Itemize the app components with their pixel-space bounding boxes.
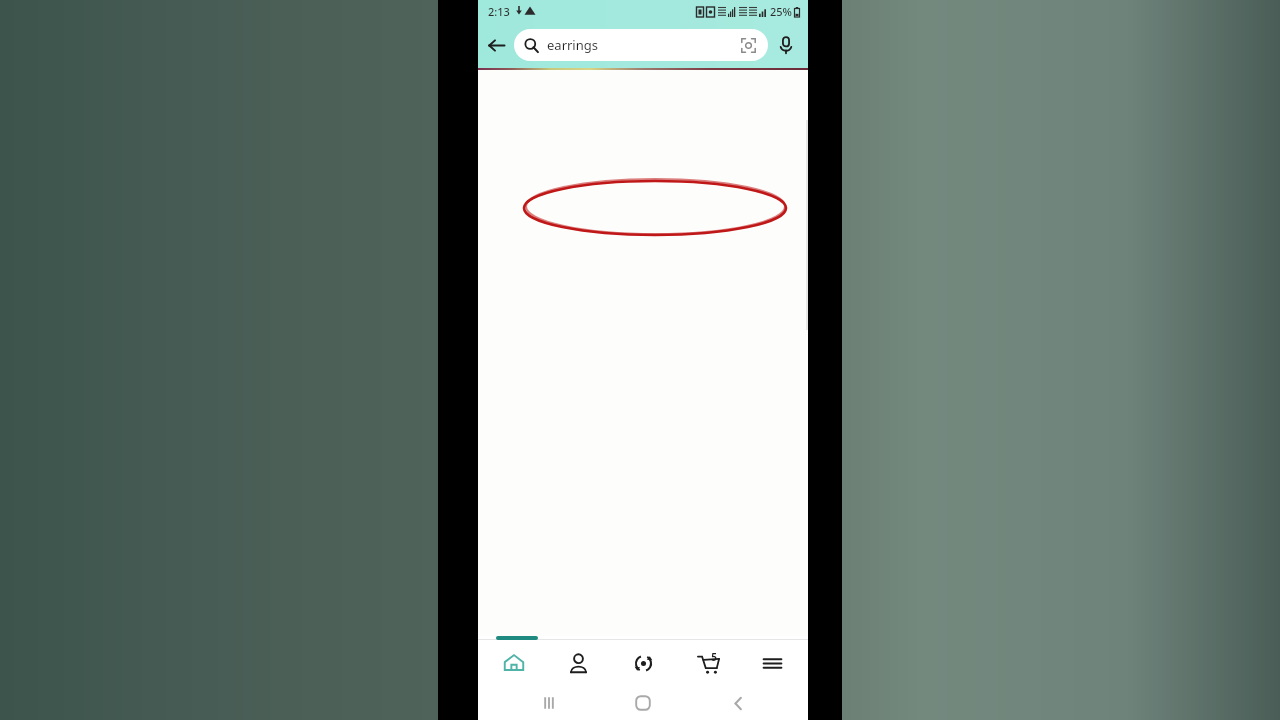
button[interactable]: Search by image (738, 35, 758, 55)
button[interactable]: Cart, 5 items (679, 640, 737, 686)
staticText: earrings (547, 36, 738, 54)
button[interactable]: Menu (743, 640, 801, 686)
button[interactable]: Account (549, 640, 607, 686)
button[interactable]: Back (478, 27, 514, 63)
button[interactable]: Recent apps (525, 686, 573, 720)
button[interactable]: Home (485, 640, 543, 686)
staticText: 5 (711, 650, 717, 664)
button[interactable]: Home (619, 686, 667, 720)
staticText: 25% (770, 4, 792, 19)
button[interactable]: Sync (614, 640, 672, 686)
button[interactable]: Back (714, 686, 762, 720)
staticText: 2:13 (488, 4, 510, 19)
button[interactable]: Voice search (768, 27, 804, 63)
button[interactable]: earrings (514, 29, 768, 61)
